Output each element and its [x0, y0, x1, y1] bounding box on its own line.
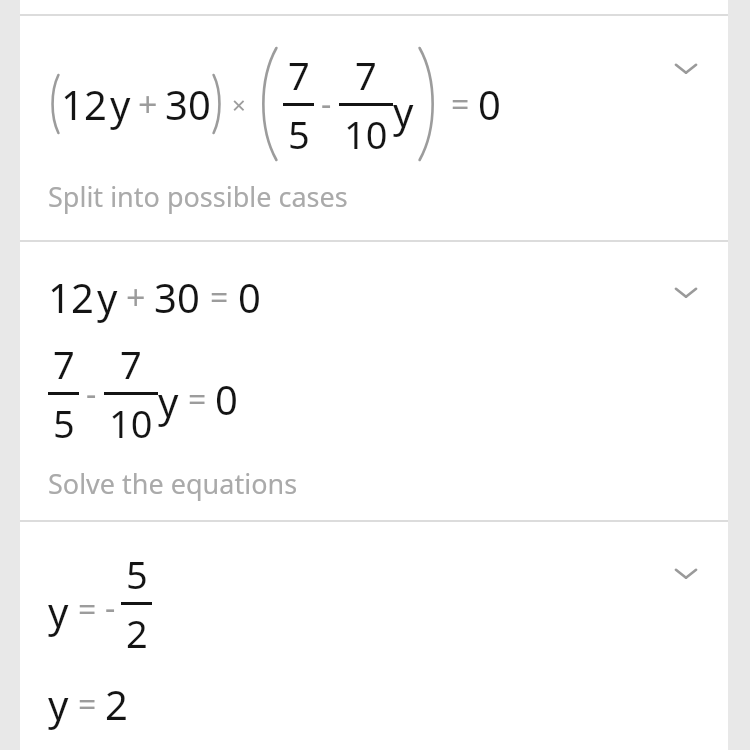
staticText: 5 [288, 108, 310, 160]
staticText: × [232, 88, 246, 121]
staticText: - [105, 586, 116, 630]
staticText: 30 [165, 77, 211, 131]
staticText: 5 [53, 397, 75, 449]
staticText: = [78, 682, 97, 726]
staticText: 7 [355, 49, 377, 101]
staticText: 2 [105, 677, 128, 731]
staticText: Solve the equations [48, 465, 298, 502]
staticText: 2 [126, 607, 148, 659]
staticText: 7 [288, 49, 310, 101]
staticText: - [86, 372, 97, 416]
staticText: + [126, 274, 146, 320]
staticText: 10 [109, 397, 153, 449]
staticText: 12 [48, 270, 94, 324]
button[interactable]: Expand step [668, 50, 704, 86]
button[interactable]: Expand step [668, 555, 704, 591]
staticText: 0 [215, 372, 238, 426]
staticText: Split into possible cases [48, 178, 348, 215]
staticText: + [138, 81, 158, 127]
button[interactable] [20, 14, 728, 240]
staticText: = [451, 82, 470, 126]
staticText: = [188, 377, 207, 421]
staticText: y [48, 584, 69, 638]
staticText: y [97, 270, 118, 324]
staticText: y [48, 677, 69, 731]
staticText: = [210, 275, 229, 319]
staticText: 5 [126, 548, 148, 600]
staticText: 7 [120, 338, 142, 390]
staticText: y [393, 84, 414, 138]
staticText: 30 [154, 270, 200, 324]
button[interactable] [20, 520, 728, 750]
staticText: = [78, 587, 97, 631]
staticText: - [321, 82, 332, 126]
staticText: 10 [344, 108, 388, 160]
staticText: 7 [53, 338, 75, 390]
staticText: y [158, 374, 179, 428]
staticText: y [110, 77, 131, 131]
staticText: 12 [61, 77, 107, 131]
button[interactable]: Expand step [668, 274, 704, 310]
staticText: 0 [238, 270, 261, 324]
staticText: 0 [478, 77, 501, 131]
button[interactable] [20, 240, 728, 520]
